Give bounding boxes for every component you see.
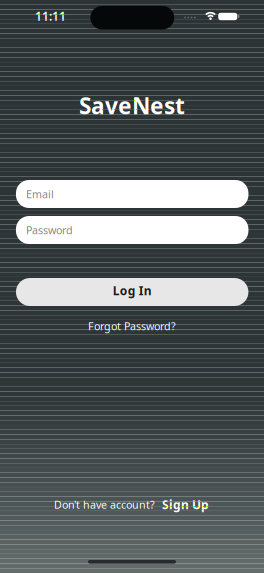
staticText: Sign Up <box>162 496 209 512</box>
staticText: Log In <box>113 282 152 298</box>
button[interactable]: Password <box>16 216 248 244</box>
button[interactable]: Forgot Password? <box>88 319 176 333</box>
staticText: Email <box>16 187 44 201</box>
staticText: Don't have account? <box>54 497 155 512</box>
staticText: Password <box>16 223 63 237</box>
button[interactable]: Log In <box>16 278 248 306</box>
staticText: Forgot Password? <box>88 319 176 333</box>
staticText: Email <box>26 187 54 201</box>
staticText: Password <box>26 223 73 237</box>
textField[interactable]: Email <box>16 187 248 201</box>
button[interactable]: Email <box>16 180 248 208</box>
button[interactable]: Don't have account? <box>54 496 209 512</box>
staticText: 11:11 <box>35 8 66 24</box>
textField[interactable]: Password <box>16 223 248 237</box>
staticText: SaveNest <box>79 90 185 120</box>
